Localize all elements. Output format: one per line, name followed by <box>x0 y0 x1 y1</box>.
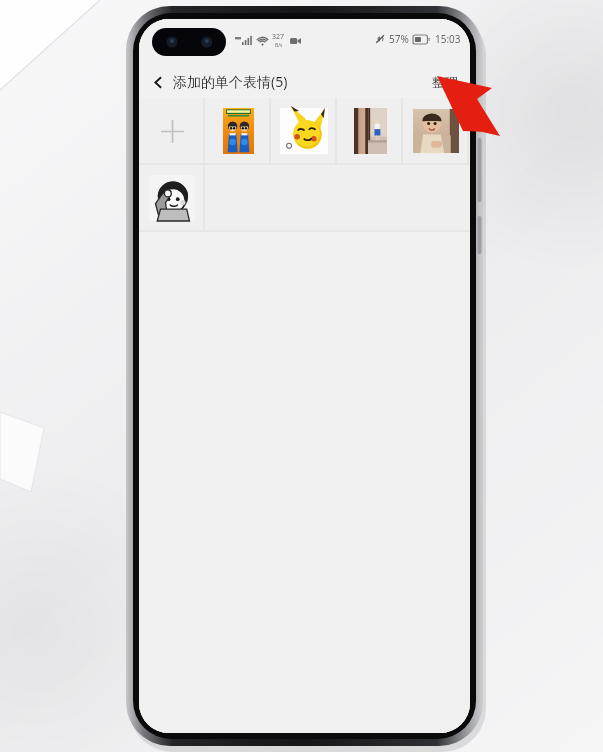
button[interactable]: 整理 <box>428 70 462 94</box>
button[interactable]: Sticker 3 <box>337 98 403 164</box>
button[interactable]: Sticker 5 <box>139 165 205 231</box>
button[interactable]: Back <box>144 68 172 96</box>
staticText: 整理 <box>432 74 458 90</box>
button[interactable]: Add sticker <box>139 98 205 164</box>
staticText: 15:03 <box>435 32 461 46</box>
staticText: 添加的单个表情(5) <box>173 72 288 91</box>
button[interactable]: Sticker 4 <box>403 98 469 164</box>
button[interactable]: Sticker 1 <box>205 98 271 164</box>
staticText: 327 <box>272 32 285 42</box>
staticText: 57% <box>389 32 409 46</box>
button[interactable]: Sticker 2 <box>271 98 337 164</box>
staticText: B/s <box>275 42 283 49</box>
